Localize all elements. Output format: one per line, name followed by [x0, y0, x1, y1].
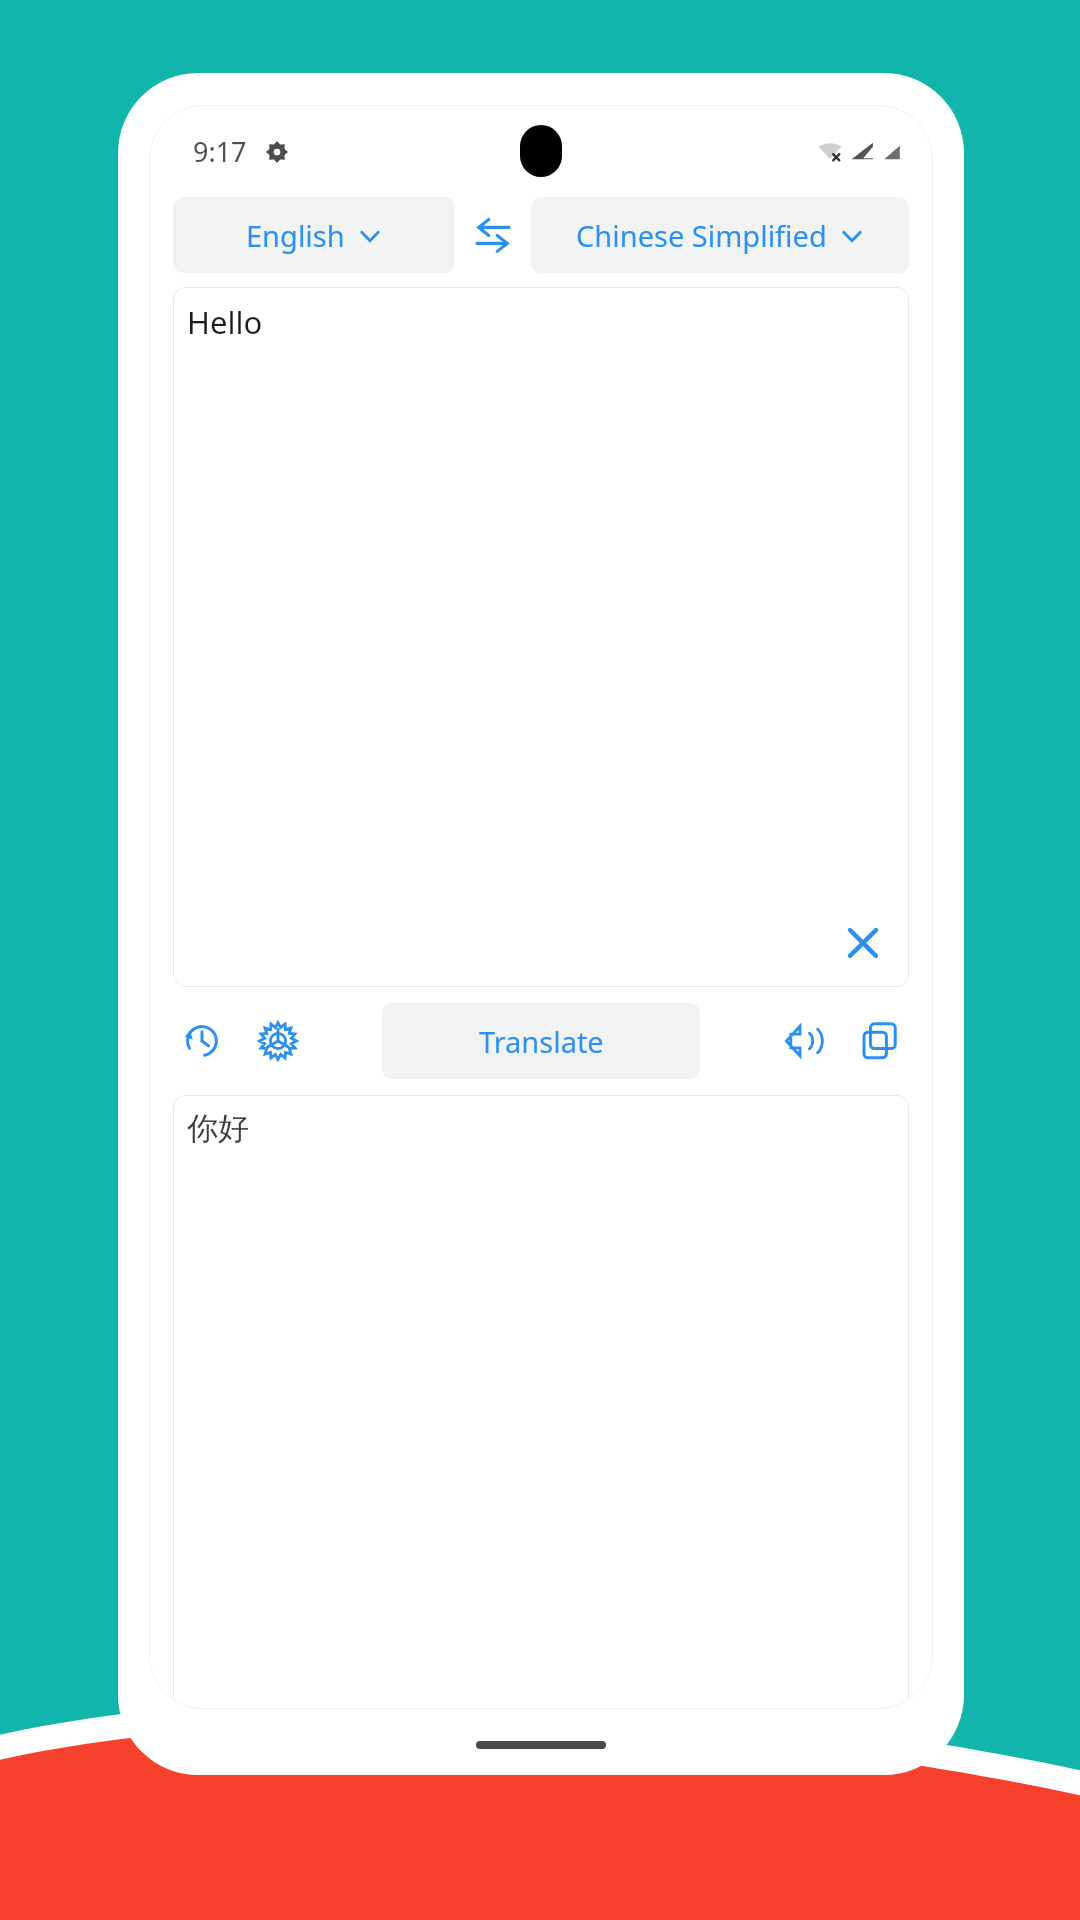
button[interactable]: Settings	[249, 1012, 307, 1070]
staticText: Chinese Simplified	[576, 216, 827, 255]
button[interactable]: 你好	[173, 1095, 909, 1709]
staticText: English	[246, 216, 345, 255]
button[interactable]: Hello	[173, 287, 909, 987]
button[interactable]: Translate	[382, 1003, 700, 1079]
button[interactable]: English	[173, 197, 455, 273]
button[interactable]: History	[173, 1012, 231, 1070]
staticText: Translate	[479, 1022, 604, 1061]
button[interactable]: Copy	[851, 1012, 909, 1070]
button[interactable]: Speak	[775, 1012, 833, 1070]
button[interactable]: Swap languages	[455, 197, 531, 273]
button[interactable]: Chinese Simplified	[531, 197, 909, 273]
staticText: Hello	[187, 301, 263, 343]
button[interactable]: Clear text	[835, 915, 891, 971]
staticText: 9:17	[193, 133, 247, 170]
staticText: 你好	[187, 1109, 249, 1148]
